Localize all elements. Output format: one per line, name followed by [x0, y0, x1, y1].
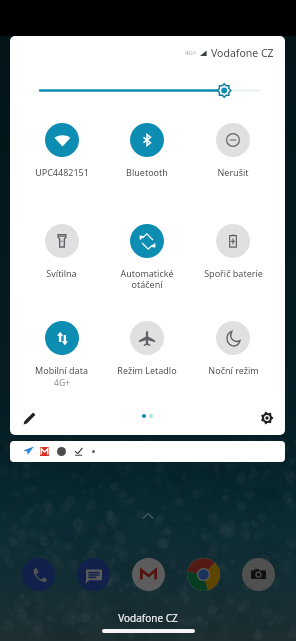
staticText: UPC4482151: [35, 166, 89, 178]
staticText: Vodafone CZ: [211, 46, 274, 60]
staticText: Režim Letadlo: [117, 364, 177, 376]
button[interactable]: Edit: [17, 406, 41, 430]
staticText: Svítilna: [46, 267, 77, 279]
staticText: Mobilní data: [35, 364, 88, 376]
button[interactable]: [10, 441, 285, 462]
staticText: Noční režim: [208, 364, 259, 376]
button[interactable]: Režim Letadlo: [104, 321, 190, 376]
button[interactable]: Settings: [255, 406, 279, 430]
button[interactable]: Mobilní data: [19, 321, 104, 389]
button[interactable]: Messages: [77, 558, 110, 591]
button[interactable]: Gmail: [132, 558, 165, 591]
button[interactable]: Phone: [22, 558, 55, 591]
button[interactable]: Bluetooth: [104, 123, 190, 178]
button[interactable]: Svítilna: [19, 224, 104, 279]
staticText: Nerušit: [217, 166, 249, 178]
button[interactable]: UPC4482151: [19, 123, 104, 178]
button[interactable]: Noční režim: [190, 321, 276, 376]
button[interactable]: Nerušit: [190, 123, 276, 178]
button[interactable]: Camera: [242, 558, 275, 591]
button[interactable]: Spořič baterie: [190, 224, 276, 279]
button[interactable]: Chrome: [187, 558, 220, 591]
staticText: 4G+: [185, 49, 197, 57]
staticText: Bluetooth: [126, 166, 168, 178]
staticText: Automatické otáčení: [120, 267, 174, 290]
staticText: 4G+: [54, 377, 70, 389]
staticText: Spořič baterie: [204, 267, 263, 279]
staticText: Vodafone CZ: [0, 611, 296, 625]
button[interactable]: Automatické otáčení: [104, 224, 190, 290]
